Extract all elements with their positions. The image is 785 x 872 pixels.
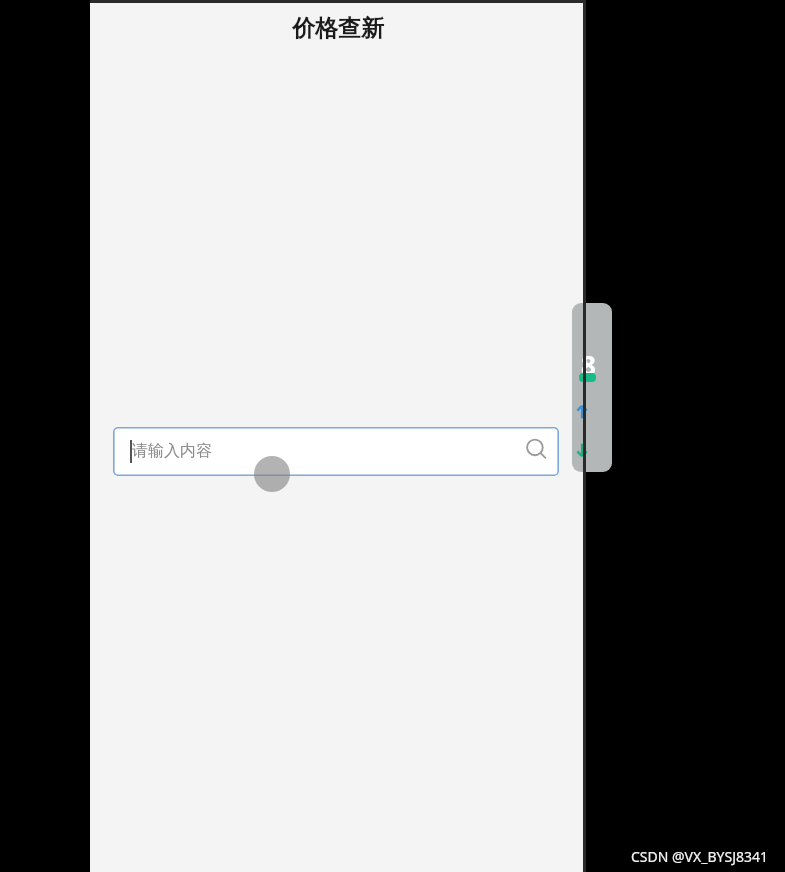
staticText: 价格查新 <box>292 14 384 43</box>
staticText: 8 <box>581 347 596 382</box>
staticText: CSDN @VX_BYSJ8341 <box>631 847 769 866</box>
button[interactable]: Floating tools <box>572 303 612 472</box>
button[interactable]: Search <box>517 430 557 470</box>
button[interactable]: 请输入内容 <box>113 427 559 476</box>
staticText: 请输入内容 <box>132 441 212 461</box>
